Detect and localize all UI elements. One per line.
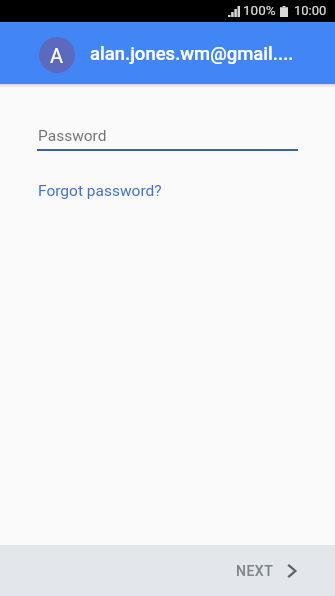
button[interactable]: A bbox=[0, 22, 335, 84]
staticText: NEXT bbox=[236, 563, 274, 579]
other: Next bbox=[288, 565, 296, 577]
staticText: A bbox=[50, 44, 64, 67]
staticText: alan.jones.wm@gmail.... bbox=[90, 43, 294, 65]
button[interactable]: Password bbox=[0, 119, 335, 153]
button[interactable]: Forgot password? bbox=[0, 180, 172, 203]
staticText: 10:00 bbox=[294, 3, 327, 18]
button[interactable]: NEXT bbox=[216, 553, 335, 589]
staticText: Password bbox=[38, 127, 107, 145]
staticText: 100% bbox=[243, 2, 276, 18]
staticText: Forgot password? bbox=[38, 182, 162, 200]
